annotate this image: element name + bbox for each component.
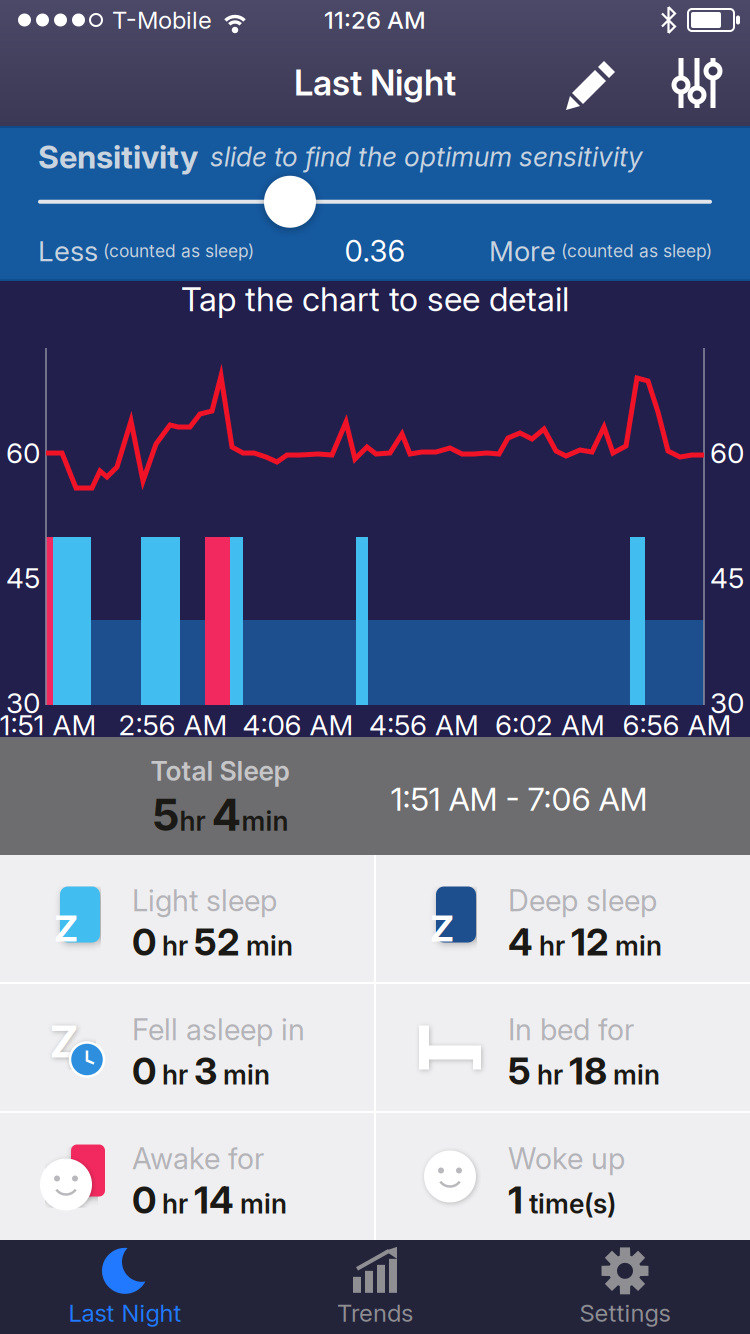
staticText: 0 hr 3 min [132,1049,270,1093]
staticText: Light sleep [132,883,277,918]
staticText: Less [38,234,98,267]
button[interactable]: Z [0,984,374,1111]
button[interactable]: Trends [250,1240,500,1334]
staticText: Z [49,1015,78,1067]
staticText: Z [430,907,453,950]
staticText: (counted as sleep) [556,241,712,261]
staticText: 30 [6,686,40,719]
staticText: 1:51 AM [0,708,96,741]
staticText: 4:56 AM [369,708,479,741]
staticText: 0 hr 52 min [132,920,293,964]
staticText: Tap the chart to see detail [181,279,569,319]
button[interactable]: Woke up [376,1113,750,1240]
staticText: 5hr 4min [151,789,288,841]
staticText: In bed for [508,1012,634,1047]
staticText: 0 hr 14 min [132,1178,287,1222]
staticText: 45 [710,561,744,594]
button[interactable]: Z [0,855,374,982]
staticText: 5 hr 18 min [508,1049,660,1093]
staticText: 45 [6,561,40,594]
staticText: 4:06 AM [242,708,353,741]
staticText: Trends [337,1299,413,1327]
staticText: 60 [710,436,744,469]
button[interactable]: Sensitivity slider [264,176,316,228]
staticText: Awake for [132,1141,264,1176]
button[interactable]: Last Night [0,1240,250,1334]
button[interactable]: Settings [500,1240,750,1334]
staticText: slide to find the optimum sensitivity [210,141,643,173]
staticText: 60 [6,436,40,469]
staticText: 11:26 AM [324,6,426,34]
staticText: 2:56 AM [118,708,227,741]
button[interactable]: Edit [562,57,614,109]
staticText: Woke up [508,1141,625,1176]
staticText: 30 [710,686,744,719]
staticText: Sensitivity [38,138,198,176]
staticText: Z [54,907,77,950]
button[interactable]: Awake for [0,1113,374,1240]
staticText: Last Night [294,63,456,103]
staticText: 1 time(s) [508,1178,616,1222]
staticText: Total Sleep [150,755,289,787]
staticText: 1:51 AM - 7:06 AM [390,780,647,818]
staticText: Deep sleep [508,883,657,918]
staticText: 6:56 AM [622,708,731,741]
staticText: T-Mobile [112,6,212,34]
staticText: 4 hr 12 min [508,920,662,964]
staticText: Settings [579,1299,670,1327]
staticText: More [489,234,556,267]
staticText: (counted as sleep) [98,241,254,261]
button[interactable]: Adjust settings [614,58,750,108]
staticText: Last Night [68,1299,181,1327]
button[interactable]: Z [376,855,750,982]
staticText: 6:02 AM [495,708,605,741]
staticText: Fell asleep in [132,1012,305,1047]
button[interactable]: In bed for [376,984,750,1111]
staticText: 0.36 [344,234,405,268]
